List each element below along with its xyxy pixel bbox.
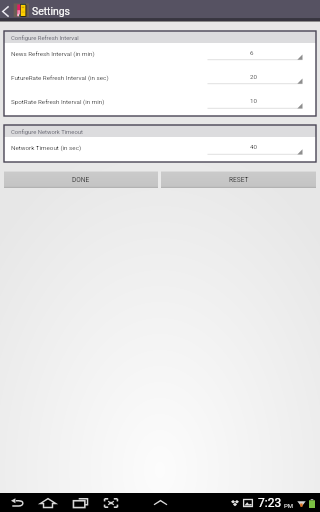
staticText: 10 (250, 97, 257, 104)
button[interactable]: Show notifications (149, 493, 171, 512)
button[interactable]: FutureRate Refresh Interval (in sec) (4, 67, 316, 91)
staticText: PM (284, 502, 294, 509)
staticText: FutureRate Refresh Interval (in sec) (11, 74, 109, 81)
button[interactable]: Navigate up (0, 0, 13, 21)
staticText: RESET (229, 176, 249, 184)
button[interactable]: News Refresh Interval (in min) (4, 43, 316, 67)
staticText: Configure Refresh Interval (11, 35, 79, 42)
staticText: 20 (250, 73, 257, 80)
button[interactable]: Network Timeout (in sec) (4, 137, 316, 162)
button[interactable]: Minimize (100, 493, 122, 512)
button[interactable]: SpotRate Refresh Interval (in min) (4, 91, 316, 116)
button[interactable]: DONE (4, 171, 158, 188)
staticText: Configure Network Timeout (11, 129, 83, 136)
staticText: DONE (72, 176, 90, 184)
staticText: 40 (250, 143, 257, 150)
button[interactable]: RESET (161, 171, 316, 188)
button[interactable]: Back (6, 493, 28, 512)
button[interactable]: Recent apps (69, 493, 91, 512)
staticText: SpotRate Refresh Interval (in min) (11, 98, 105, 105)
staticText: 6 (250, 49, 254, 56)
staticText: Network Timeout (in sec) (11, 144, 82, 151)
button[interactable]: Home (37, 493, 59, 512)
staticText: Settings (32, 5, 70, 17)
staticText: News Refresh Interval (in min) (11, 50, 95, 57)
staticText: 7:23 (258, 496, 282, 510)
